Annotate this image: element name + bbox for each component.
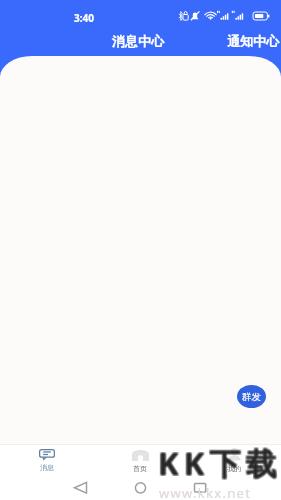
- staticText: 3:40: [74, 11, 94, 25]
- staticText: 群发: [242, 391, 261, 403]
- staticText: 通知中心: [227, 33, 279, 49]
- button[interactable]: 通知中心: [227, 33, 279, 49]
- staticText: KK下载: [157, 442, 281, 484]
- button[interactable]: 首页: [93, 442, 187, 478]
- staticText: KK下载: [158, 442, 281, 484]
- staticText: KK下载: [157, 443, 281, 485]
- staticText: KK下载: [159, 441, 281, 483]
- staticText: www.kkx.net: [159, 484, 252, 500]
- staticText: KK下载: [158, 443, 281, 485]
- staticText: 消息中心: [112, 33, 164, 49]
- staticText: 我的: [227, 464, 241, 473]
- button[interactable]: 我的: [187, 442, 281, 478]
- button[interactable]: 群发: [237, 385, 266, 408]
- staticText: KK下载: [158, 441, 281, 483]
- staticText: 首页: [133, 464, 147, 473]
- staticText: KK下载: [157, 441, 281, 483]
- staticText: KK下载: [159, 442, 281, 484]
- staticText: 消息: [40, 463, 54, 472]
- button[interactable]: 消息中心: [112, 33, 164, 49]
- staticText: KK下载: [159, 443, 281, 485]
- button[interactable]: 消息: [0, 442, 93, 478]
